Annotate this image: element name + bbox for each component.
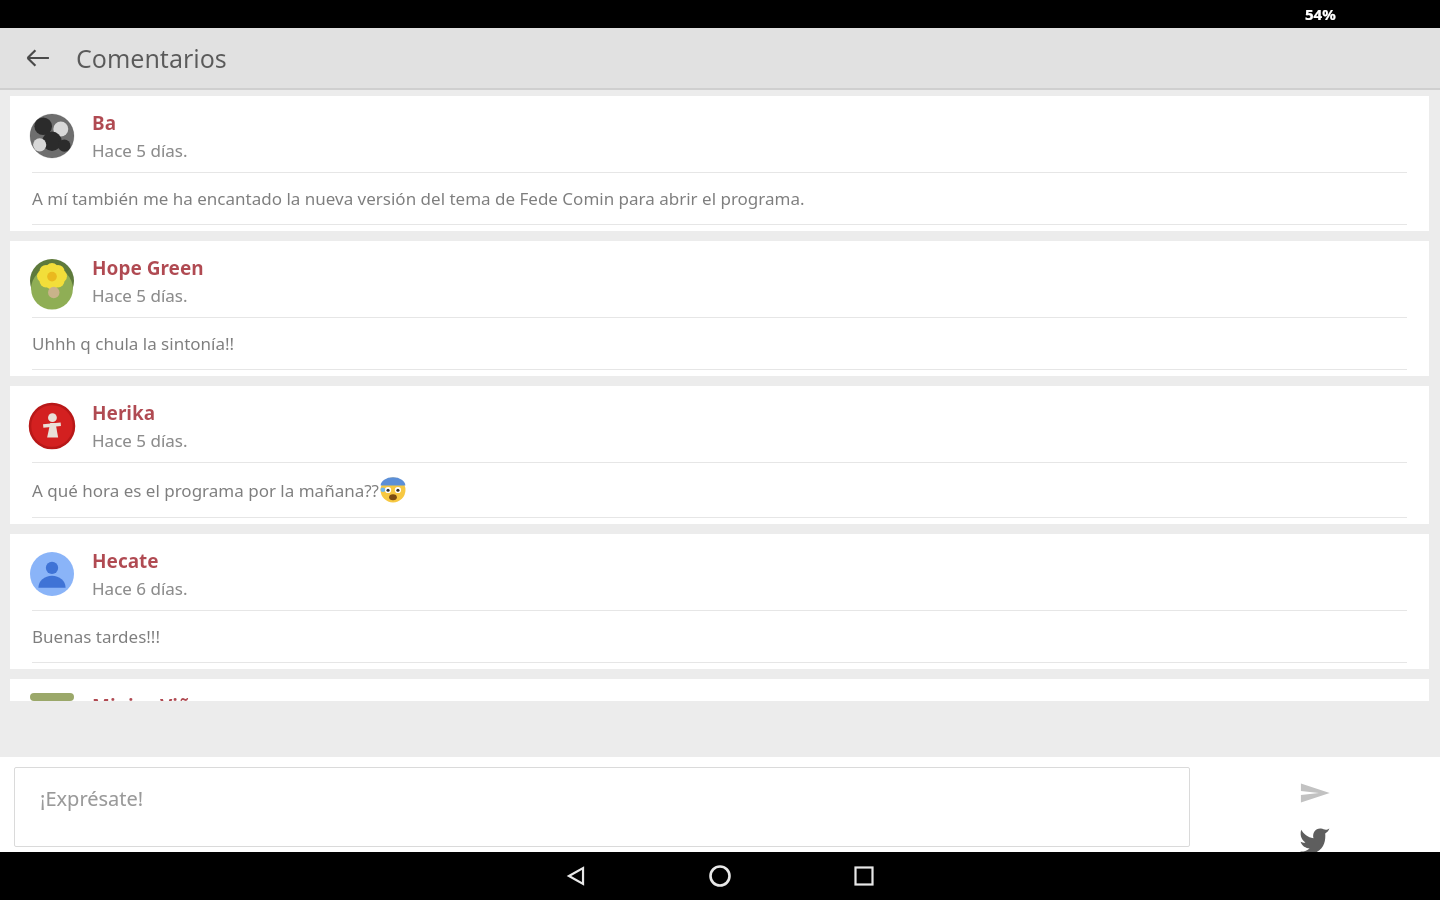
staticText: Buenas tardes!!! (32, 625, 161, 648)
staticText: Hace 5 días. (92, 284, 188, 307)
staticText: ¡Exprésate! (40, 785, 144, 812)
staticText: Herika (92, 400, 156, 426)
button[interactable]: Send (1291, 769, 1339, 817)
button[interactable]: Share on Twitter (1291, 821, 1339, 852)
staticText: Hace 5 días. (92, 139, 188, 162)
staticText: Hace 5 días. (92, 429, 188, 452)
button[interactable]: Herika (10, 386, 1429, 524)
button[interactable]: Recent apps (828, 852, 900, 900)
staticText: Hecate (92, 548, 159, 574)
button[interactable]: Hecate (10, 534, 1429, 669)
button[interactable]: Miniso Viñas (10, 679, 1429, 701)
button[interactable]: Ba (10, 96, 1429, 231)
staticText: 54% (1305, 4, 1336, 24)
staticText: A mí también me ha encantado la nueva ve… (32, 187, 805, 210)
staticText: Hope Green (92, 255, 204, 281)
button[interactable]: Hope Green (10, 241, 1429, 376)
button[interactable]: Home (684, 852, 756, 900)
button[interactable]: Back (14, 34, 62, 82)
staticText: Comentarios (76, 41, 227, 75)
staticText: Hace 6 días. (92, 577, 188, 600)
staticText: Uhhh q chula la sintonía!! (32, 332, 235, 355)
button[interactable]: ¡Exprésate! (14, 767, 1190, 847)
button[interactable]: Back (540, 852, 612, 900)
staticText: A qué hora es el programa por la mañana?… (32, 479, 379, 502)
staticText: Ba (92, 110, 117, 136)
staticText: Miniso Viñas (92, 693, 212, 701)
